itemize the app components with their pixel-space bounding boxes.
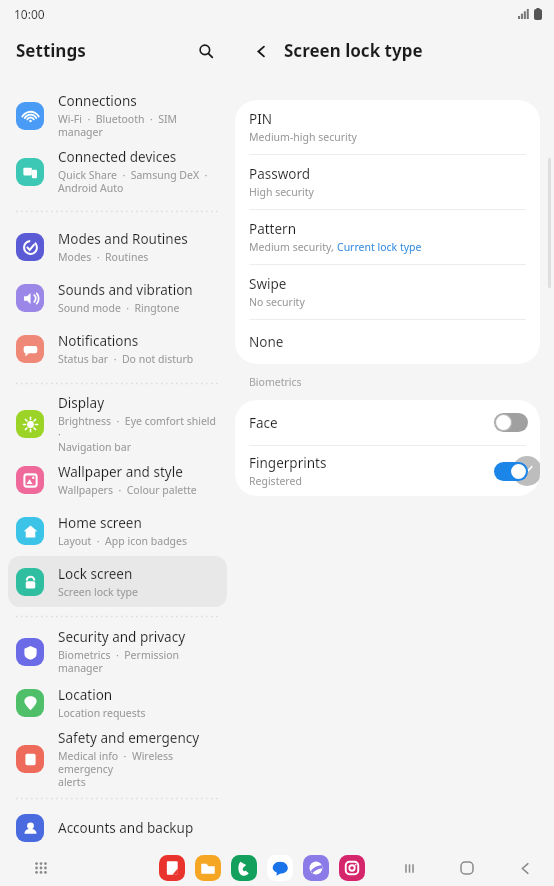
staticText: Location [58, 686, 113, 704]
staticText: Safety and emergency [58, 729, 200, 747]
button[interactable]: Display [8, 393, 227, 454]
button[interactable]: Modes and Routines [8, 221, 227, 272]
staticText: Wallpapers · Colour palette [58, 483, 197, 497]
staticText: Registered [249, 474, 302, 488]
button[interactable]: Safety and emergency [8, 728, 227, 789]
staticText: Medium-high security [249, 130, 357, 144]
button[interactable]: Face toggle [494, 413, 528, 432]
button[interactable]: Password [235, 155, 540, 209]
button[interactable]: Edit fingerprints [512, 456, 540, 486]
staticText: Status bar · Do not disturb [58, 352, 194, 366]
staticText: None [249, 333, 284, 351]
staticText: Face [249, 414, 278, 432]
staticText: No security [249, 295, 305, 309]
button[interactable]: Phone [231, 855, 257, 881]
button[interactable]: Internet [303, 855, 329, 881]
staticText: Wallpaper and style [58, 463, 183, 481]
staticText: Lock screen [58, 565, 133, 583]
button[interactable]: Swipe [235, 265, 540, 319]
staticText: Accounts and backup [58, 819, 194, 837]
button[interactable]: Back [247, 37, 275, 65]
button[interactable]: PIN [235, 100, 540, 154]
staticText: Fingerprints [249, 454, 327, 472]
button[interactable]: Security and privacy [8, 626, 227, 677]
button[interactable]: Pattern [235, 210, 540, 264]
button[interactable]: Recents [396, 855, 422, 881]
button[interactable]: Back [512, 855, 538, 881]
button[interactable]: Search [191, 36, 221, 66]
button[interactable]: Location [8, 677, 227, 728]
staticText: Screen lock type [58, 585, 138, 599]
staticText: Biometrics · Permission manager [58, 648, 219, 675]
staticText: Medium security, [249, 240, 337, 254]
staticText: Home screen [58, 514, 142, 532]
button[interactable]: Notifications [8, 323, 227, 374]
staticText: Swipe [249, 275, 287, 293]
staticText: Medical info · Wireless emergency alerts [58, 749, 219, 789]
staticText: Location requests [58, 706, 146, 720]
staticText: Modes · Routines [58, 250, 149, 264]
staticText: Brightness · Eye comfort shield · Naviga… [58, 414, 219, 454]
button[interactable]: Home screen [8, 505, 227, 556]
button[interactable]: Fingerprints [235, 446, 540, 496]
button[interactable]: Connections [8, 90, 227, 141]
staticText: Notifications [58, 332, 139, 350]
button[interactable]: Lock screen [8, 556, 227, 607]
button[interactable]: Fingerprints toggle [494, 462, 528, 481]
staticText: Connections [58, 92, 137, 110]
staticText: 10:00 [14, 6, 45, 22]
staticText: Quick Share · Samsung DeX · Android Auto [58, 168, 208, 195]
staticText: Connected devices [58, 148, 177, 166]
staticText: Current lock type [337, 240, 422, 254]
button[interactable]: Connected devices [8, 141, 227, 202]
button[interactable]: Home [454, 855, 480, 881]
staticText: Settings [16, 39, 191, 62]
staticText: Modes and Routines [58, 230, 188, 248]
button[interactable]: All apps [28, 855, 54, 881]
staticText: Sound mode · Ringtone [58, 301, 180, 315]
staticText: Security and privacy [58, 628, 186, 646]
staticText: Pattern [249, 220, 297, 238]
button[interactable]: Face [235, 400, 540, 445]
button[interactable]: Samsung Notes [159, 855, 185, 881]
staticText: Layout · App icon badges [58, 534, 188, 548]
button[interactable]: Accounts and backup [8, 808, 227, 848]
staticText: High security [249, 185, 314, 199]
button[interactable]: Wallpaper and style [8, 454, 227, 505]
staticText: PIN [249, 110, 273, 128]
button[interactable]: None [235, 320, 540, 364]
button[interactable]: Instagram [339, 855, 365, 881]
staticText: Sounds and vibration [58, 281, 193, 299]
staticText: Password [249, 165, 311, 183]
staticText: Screen lock type [284, 39, 423, 62]
staticText: Biometrics [249, 375, 302, 389]
staticText: Wi-Fi · Bluetooth · SIM manager [58, 112, 219, 139]
button[interactable]: Sounds and vibration [8, 272, 227, 323]
button[interactable]: Messages [267, 855, 293, 881]
staticText: Display [58, 394, 105, 412]
button[interactable]: My Files [195, 855, 221, 881]
